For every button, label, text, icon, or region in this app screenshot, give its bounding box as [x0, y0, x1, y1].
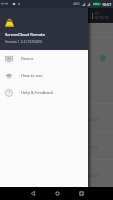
button[interactable]: How to use [0, 67, 88, 84]
staticText: IFHS [89, 145, 98, 151]
button[interactable]: Device [0, 50, 88, 67]
button[interactable]: Help & Feedback [0, 84, 88, 101]
staticText: Help & Feedback [21, 90, 54, 96]
staticText: ScreenCloud Remote [5, 32, 46, 38]
staticText: WAIT [89, 117, 100, 123]
button[interactable]: Back [21, 187, 45, 200]
button[interactable]: Home [45, 187, 69, 200]
staticText: 4A/S [73, 2, 80, 6]
staticText: 10:57 [102, 2, 112, 7]
staticText: Triangle2 [90, 29, 108, 34]
button[interactable]: Recents [69, 187, 93, 200]
staticText: Device [21, 56, 34, 62]
staticText: MY NETWORK [95, 12, 113, 20]
staticText: Version 1.2.4 (1020409) [5, 39, 42, 44]
staticText: WAIT [89, 173, 100, 179]
staticText: How to use [21, 73, 43, 79]
